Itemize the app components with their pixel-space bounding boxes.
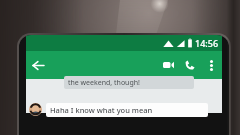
staticText: Haha I know what you mean [50, 105, 153, 115]
staticText: 14:56 [195, 37, 219, 49]
button[interactable]: Haha I know what you mean [46, 103, 208, 117]
button[interactable]: More options [201, 55, 221, 75]
button[interactable]: Back [26, 53, 50, 77]
staticText: the weekend, though! [68, 78, 140, 88]
button[interactable]: Call [179, 54, 201, 76]
button[interactable]: the weekend, though! [64, 76, 194, 89]
button[interactable]: Video call [157, 54, 179, 76]
